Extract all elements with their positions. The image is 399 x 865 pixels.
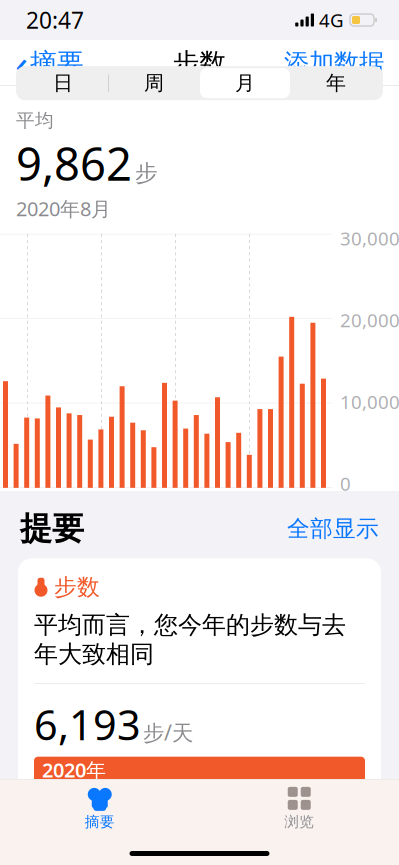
staticText: 提要 bbox=[20, 509, 84, 548]
staticText: 20,000 bbox=[340, 308, 399, 332]
staticText: 月 bbox=[235, 71, 255, 95]
staticText: 9,862 bbox=[16, 133, 132, 193]
button[interactable]: 添加数据 bbox=[274, 40, 394, 86]
staticText: 步数 bbox=[54, 573, 100, 601]
button[interactable]: 日 bbox=[18, 68, 108, 98]
staticText: ‹ bbox=[15, 35, 28, 91]
button[interactable]: 全部显示 bbox=[287, 511, 379, 546]
staticText: 2020年8月 bbox=[16, 195, 111, 222]
staticText: 浏览 bbox=[284, 813, 314, 831]
button[interactable]: ‹ bbox=[5, 40, 94, 86]
button[interactable]: 浏览 bbox=[199, 780, 399, 831]
staticText: 0 bbox=[340, 471, 351, 496]
staticText: 步数 bbox=[172, 47, 226, 79]
staticText: 年 bbox=[326, 71, 346, 95]
staticText: 步/天 bbox=[143, 718, 193, 746]
staticText: 4G bbox=[314, 8, 344, 32]
button[interactable]: 年 bbox=[291, 68, 381, 98]
staticText: 全部显示 bbox=[287, 515, 379, 542]
staticText: 10,000 bbox=[340, 389, 399, 414]
staticText: 日 bbox=[53, 71, 73, 95]
button[interactable]: 月 bbox=[200, 68, 290, 98]
staticText: 周 bbox=[144, 71, 164, 95]
staticText: 平均 bbox=[16, 109, 54, 132]
staticText: 30,000 bbox=[340, 226, 399, 251]
staticText: 添加数据 bbox=[284, 47, 384, 78]
button[interactable]: 周 bbox=[109, 68, 199, 98]
staticText: 摘要 bbox=[30, 47, 84, 79]
staticText: 6,193 bbox=[34, 697, 141, 752]
button[interactable]: 摘要 bbox=[0, 780, 199, 831]
staticText: 20:47 bbox=[26, 5, 84, 35]
staticText: 2日 bbox=[24, 492, 54, 517]
staticText: 2020年 bbox=[42, 756, 106, 783]
button[interactable]: 步数 bbox=[18, 558, 381, 793]
staticText: 摘要 bbox=[85, 813, 115, 831]
staticText: 平均而言，您今年的步数与去年大致相同 bbox=[34, 610, 346, 669]
staticText: 步 bbox=[135, 159, 158, 187]
